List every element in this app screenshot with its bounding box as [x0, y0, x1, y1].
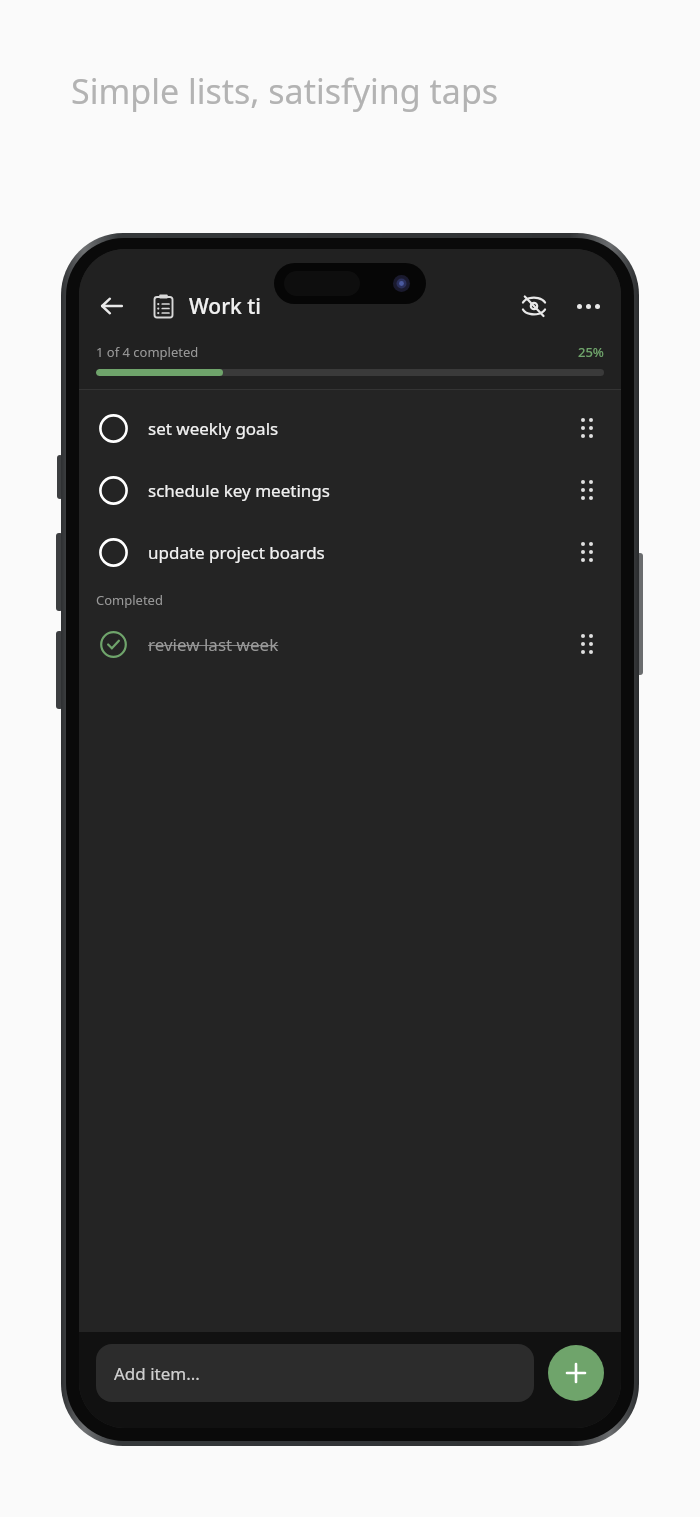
staticText: schedule key meetings	[148, 479, 330, 502]
button[interactable]: Reorder schedule key meetings	[570, 473, 604, 507]
button[interactable]: set weekly goals	[79, 397, 621, 459]
staticText: 25%	[578, 343, 604, 361]
staticText: review last week	[148, 633, 279, 656]
button[interactable]: Reorder update project boards	[570, 535, 604, 569]
staticText: 1 of 4 completed	[96, 343, 199, 361]
staticText: Work ti	[189, 292, 261, 321]
staticText: Simple lists, satisfying taps	[71, 68, 499, 114]
button[interactable]: review last week	[79, 613, 621, 675]
staticText: Completed	[96, 591, 163, 609]
button[interactable]: Reorder set weekly goals	[570, 411, 604, 445]
button[interactable]: Add item	[548, 1345, 604, 1401]
button[interactable]: Add item...	[96, 1344, 534, 1402]
staticText: update project boards	[148, 541, 325, 564]
button[interactable]: Reorder review last week	[570, 627, 604, 661]
staticText: set weekly goals	[148, 417, 279, 440]
button[interactable]: update project boards	[79, 521, 621, 583]
button[interactable]: Back	[89, 283, 135, 329]
button[interactable]: More options	[565, 283, 611, 329]
button[interactable]: schedule key meetings	[79, 459, 621, 521]
staticText: Add item...	[114, 1362, 200, 1385]
button[interactable]: Hide completed	[511, 283, 557, 329]
